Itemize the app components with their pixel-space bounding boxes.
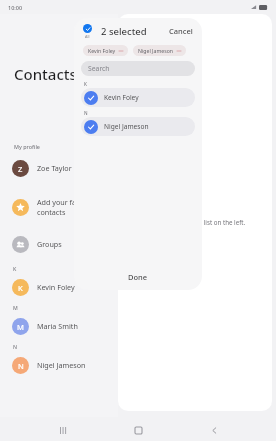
- staticText: Cancel: [169, 26, 193, 36]
- staticText: Contacts: [14, 64, 77, 84]
- staticText: My profile: [14, 143, 40, 150]
- staticText: Nigel Jameson: [138, 47, 174, 54]
- button[interactable]: Home: [125, 419, 151, 441]
- staticText: M: [13, 304, 18, 311]
- staticText: Z: [18, 164, 23, 174]
- staticText: 2 selected: [101, 25, 147, 38]
- button[interactable]: Add your favourite: [0, 192, 118, 222]
- button[interactable]: Done: [74, 264, 202, 290]
- staticText: Kevin Foley: [104, 93, 139, 102]
- button[interactable]: Recents: [50, 419, 76, 441]
- staticText: Kevin Foley: [88, 47, 116, 54]
- staticText: contacts: [37, 207, 66, 217]
- button[interactable]: All: [83, 24, 92, 39]
- button[interactable]: Back: [201, 419, 227, 441]
- staticText: All: [85, 34, 90, 39]
- button[interactable]: Cancel: [169, 26, 193, 36]
- staticText: N: [84, 110, 88, 116]
- staticText: K: [84, 81, 87, 87]
- staticText: N: [13, 343, 18, 350]
- button[interactable]: K: [0, 273, 118, 301]
- staticText: Done: [128, 272, 148, 282]
- button[interactable]: M: [0, 312, 118, 340]
- staticText: Maria Smith: [37, 321, 78, 331]
- staticText: K: [13, 265, 17, 272]
- staticText: Nigel Jameson: [37, 360, 86, 370]
- staticText: 10:00: [8, 4, 23, 11]
- staticText: Select a contact from the list on the le…: [130, 218, 246, 226]
- staticText: Add your favourite: [37, 197, 101, 207]
- button[interactable]: Groups: [0, 230, 118, 258]
- staticText: Search: [88, 64, 110, 73]
- button[interactable]: Search: [81, 61, 195, 76]
- staticText: N: [18, 361, 24, 371]
- staticText: Groups: [37, 239, 62, 249]
- button[interactable]: Kevin Foley: [83, 45, 128, 56]
- staticText: Nigel Jameson: [104, 122, 149, 131]
- staticText: K: [18, 283, 23, 293]
- button[interactable]: Z: [0, 154, 118, 182]
- staticText: Kevin Foley: [37, 282, 75, 292]
- button[interactable]: Kevin Foley: [81, 88, 195, 107]
- button[interactable]: N: [0, 351, 118, 379]
- button[interactable]: Nigel Jameson: [133, 45, 186, 56]
- staticText: M: [17, 322, 24, 332]
- button[interactable]: Nigel Jameson: [81, 117, 195, 136]
- staticText: Zoe Taylor: [37, 163, 72, 173]
